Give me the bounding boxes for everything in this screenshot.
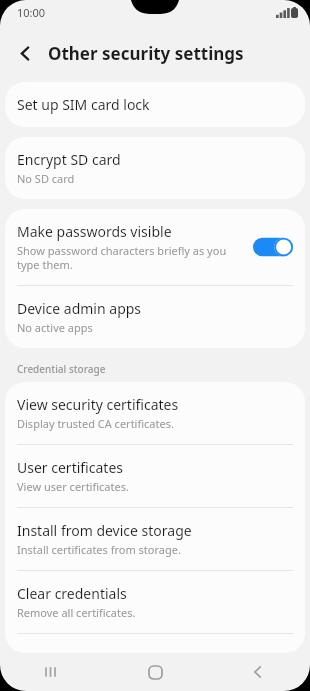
staticText: View user certificates. (17, 479, 129, 494)
staticText: Remove all certificates. (17, 605, 136, 620)
button[interactable]: Make passwords visible (5, 209, 305, 285)
staticText: Install certificates from storage. (17, 542, 181, 557)
staticText: Encrypt SD card (17, 150, 121, 169)
button[interactable]: Back (232, 653, 284, 691)
button[interactable]: Make passwords visible toggle (253, 235, 293, 259)
button[interactable]: Recent apps (26, 653, 78, 691)
staticText: Install from device storage (17, 521, 192, 540)
staticText: Show password characters briefly as you … (17, 243, 245, 272)
button[interactable]: Install from device storage (5, 508, 305, 570)
button[interactable]: Device admin apps (5, 286, 305, 348)
staticText: Make passwords visible (17, 222, 172, 241)
staticText: Display trusted CA certificates. (17, 416, 174, 431)
button[interactable]: User certificates (5, 445, 305, 507)
button[interactable]: Encrypt SD card (5, 137, 305, 199)
button[interactable]: Set up SIM card lock (5, 82, 305, 127)
button[interactable]: View security certificates (5, 382, 305, 444)
staticText: Device admin apps (17, 299, 142, 318)
staticText: Set up SIM card lock (17, 95, 150, 114)
staticText: User certificates (17, 458, 123, 477)
staticText: 10:00 (17, 5, 46, 20)
button[interactable]: Clear credentials (5, 571, 305, 633)
staticText: Credential storage (17, 362, 106, 376)
button[interactable]: Back (8, 36, 42, 70)
staticText: Clear credentials (17, 584, 127, 603)
staticText: No SD card (17, 171, 75, 186)
button[interactable]: Home (129, 653, 181, 691)
staticText: View security certificates (17, 395, 179, 414)
staticText: No active apps (17, 320, 93, 335)
staticText: Other security settings (48, 42, 244, 65)
